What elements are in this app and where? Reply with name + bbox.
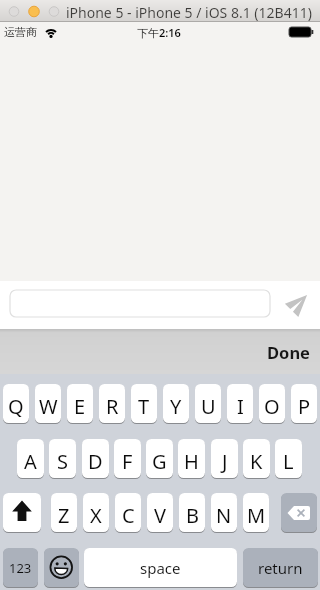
button[interactable]: Y [163, 384, 189, 423]
button[interactable]: T [131, 384, 157, 423]
button[interactable]: 123 [3, 548, 38, 587]
button[interactable]: P [291, 384, 317, 423]
button[interactable]: H [178, 439, 205, 478]
staticText: 运营商 [4, 25, 37, 39]
button[interactable]: J [211, 439, 238, 478]
staticText: Done [267, 341, 310, 363]
staticText: space [140, 558, 181, 578]
button[interactable] [10, 290, 270, 317]
button[interactable] [281, 493, 317, 532]
staticText: I [237, 393, 244, 420]
staticText: H [184, 448, 199, 475]
button[interactable] [286, 290, 312, 316]
button[interactable]: A [17, 439, 44, 478]
staticText: Q [8, 393, 24, 420]
button[interactable]: M [243, 493, 269, 532]
staticText: 下午2:16 [137, 25, 181, 40]
button[interactable]: Done [0, 329, 320, 374]
staticText: return [258, 558, 303, 578]
staticText: 123 [9, 559, 32, 577]
button[interactable]: C [115, 493, 141, 532]
staticText: C [122, 502, 135, 529]
button[interactable] [44, 548, 79, 587]
staticText: E [74, 393, 86, 420]
staticText: T [138, 393, 150, 420]
button[interactable]: U [195, 384, 221, 423]
staticText: X [90, 502, 102, 529]
button[interactable]: space [84, 548, 237, 587]
button[interactable]: D [82, 439, 109, 478]
button[interactable]: N [211, 493, 237, 532]
staticText: B [186, 502, 199, 529]
button[interactable]: X [83, 493, 109, 532]
staticText: G [152, 448, 167, 475]
staticText: S [57, 448, 68, 475]
staticText: A [24, 448, 37, 475]
staticText: Y [170, 393, 182, 420]
staticText: V [154, 502, 166, 529]
button[interactable]: R [99, 384, 125, 423]
button[interactable]: K [243, 439, 270, 478]
staticText: M [247, 502, 266, 529]
staticText: iPhone 5 - iPhone 5 / iOS 8.1 (12B411) [66, 3, 312, 22]
button[interactable]: E [67, 384, 93, 423]
button[interactable]: I [227, 384, 253, 423]
staticText: L [283, 448, 294, 475]
staticText: Z [58, 502, 70, 529]
staticText: D [88, 448, 103, 475]
staticText: N [216, 502, 232, 529]
button[interactable]: S [49, 439, 76, 478]
staticText: R [106, 393, 119, 420]
staticText: F [122, 448, 133, 475]
button[interactable]: Q [3, 384, 29, 423]
button[interactable]: B [179, 493, 205, 532]
button[interactable]: O [259, 384, 285, 423]
button[interactable]: L [275, 439, 302, 478]
button[interactable]: return [243, 548, 318, 587]
staticText: W [39, 393, 58, 420]
button[interactable]: W [35, 384, 61, 423]
button[interactable]: F [114, 439, 141, 478]
staticText: U [201, 393, 216, 420]
staticText: K [250, 448, 263, 475]
staticText: P [298, 393, 311, 420]
button[interactable]: G [146, 439, 173, 478]
staticText: J [222, 448, 228, 475]
staticText: O [264, 393, 280, 420]
button[interactable]: V [147, 493, 173, 532]
button[interactable]: Z [51, 493, 77, 532]
button[interactable] [3, 493, 41, 532]
